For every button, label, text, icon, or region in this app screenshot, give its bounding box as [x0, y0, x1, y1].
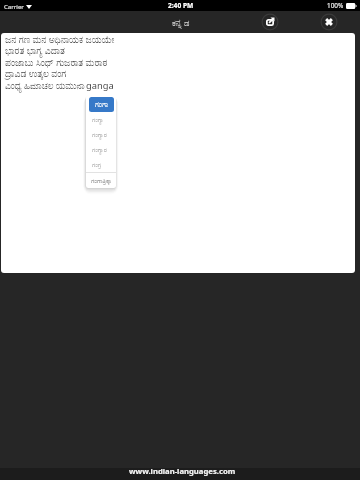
staticText: ಗಂಗ್ರ [92, 162, 102, 168]
staticText: ಗಂಗಾತ್ರಿಕ್ಕಾ [91, 178, 112, 184]
staticText: ಗಂಗ್ಯಾರ [92, 132, 107, 138]
button[interactable]: ಗಂಗ್ಯಾ [86, 112, 116, 127]
button[interactable]: ಗಂಗ್ಯಾರ [86, 127, 116, 142]
staticText: ಗಂಗ್ಯಾ [92, 117, 104, 123]
staticText: ಗಂಗಾ [95, 101, 109, 108]
staticText: www.indian-languages.com [129, 466, 236, 476]
button[interactable]: ಗಂಗ್ಯಾರ [86, 142, 116, 157]
staticText: ಗಂಗ್ಯಾರ [92, 147, 107, 153]
staticText: ಭಾರತ ಭಾಗ್ಯ ವಿದಾತ [5, 44, 65, 57]
staticText: 2:40 PM [168, 1, 194, 10]
staticText: ದ್ರಾವಿಡ ಉತ್ಕಲ ವಂಗ [5, 67, 67, 80]
button[interactable]: Share [260, 12, 280, 32]
staticText: ಜನ ಗಣ ಮನ ಅಧಿನಾಯಕ ಜಯಯೇ [5, 33, 115, 46]
staticText: ಪಂಜಾಬು ಸಿಂಧ್ ಗುಜರಾತ ಮರಾಠ [5, 56, 108, 69]
staticText: Carrier [4, 2, 24, 10]
staticText: ganga [86, 79, 114, 92]
button[interactable]: ಗಂಗಾತ್ರಿಕ್ಕಾ [86, 173, 116, 188]
staticText: ವಿಂಧ್ಯ ಹಿಮಾಚಲ ಯಮುನಾ [5, 79, 85, 91]
staticText: ಕನ್ನ ಡ [172, 17, 190, 29]
staticText: 100% [327, 1, 344, 10]
button[interactable]: Close [319, 12, 339, 32]
button[interactable]: ಗಂಗ್ರ [86, 157, 116, 172]
button[interactable]: ಗಂಗಾ [89, 97, 114, 112]
